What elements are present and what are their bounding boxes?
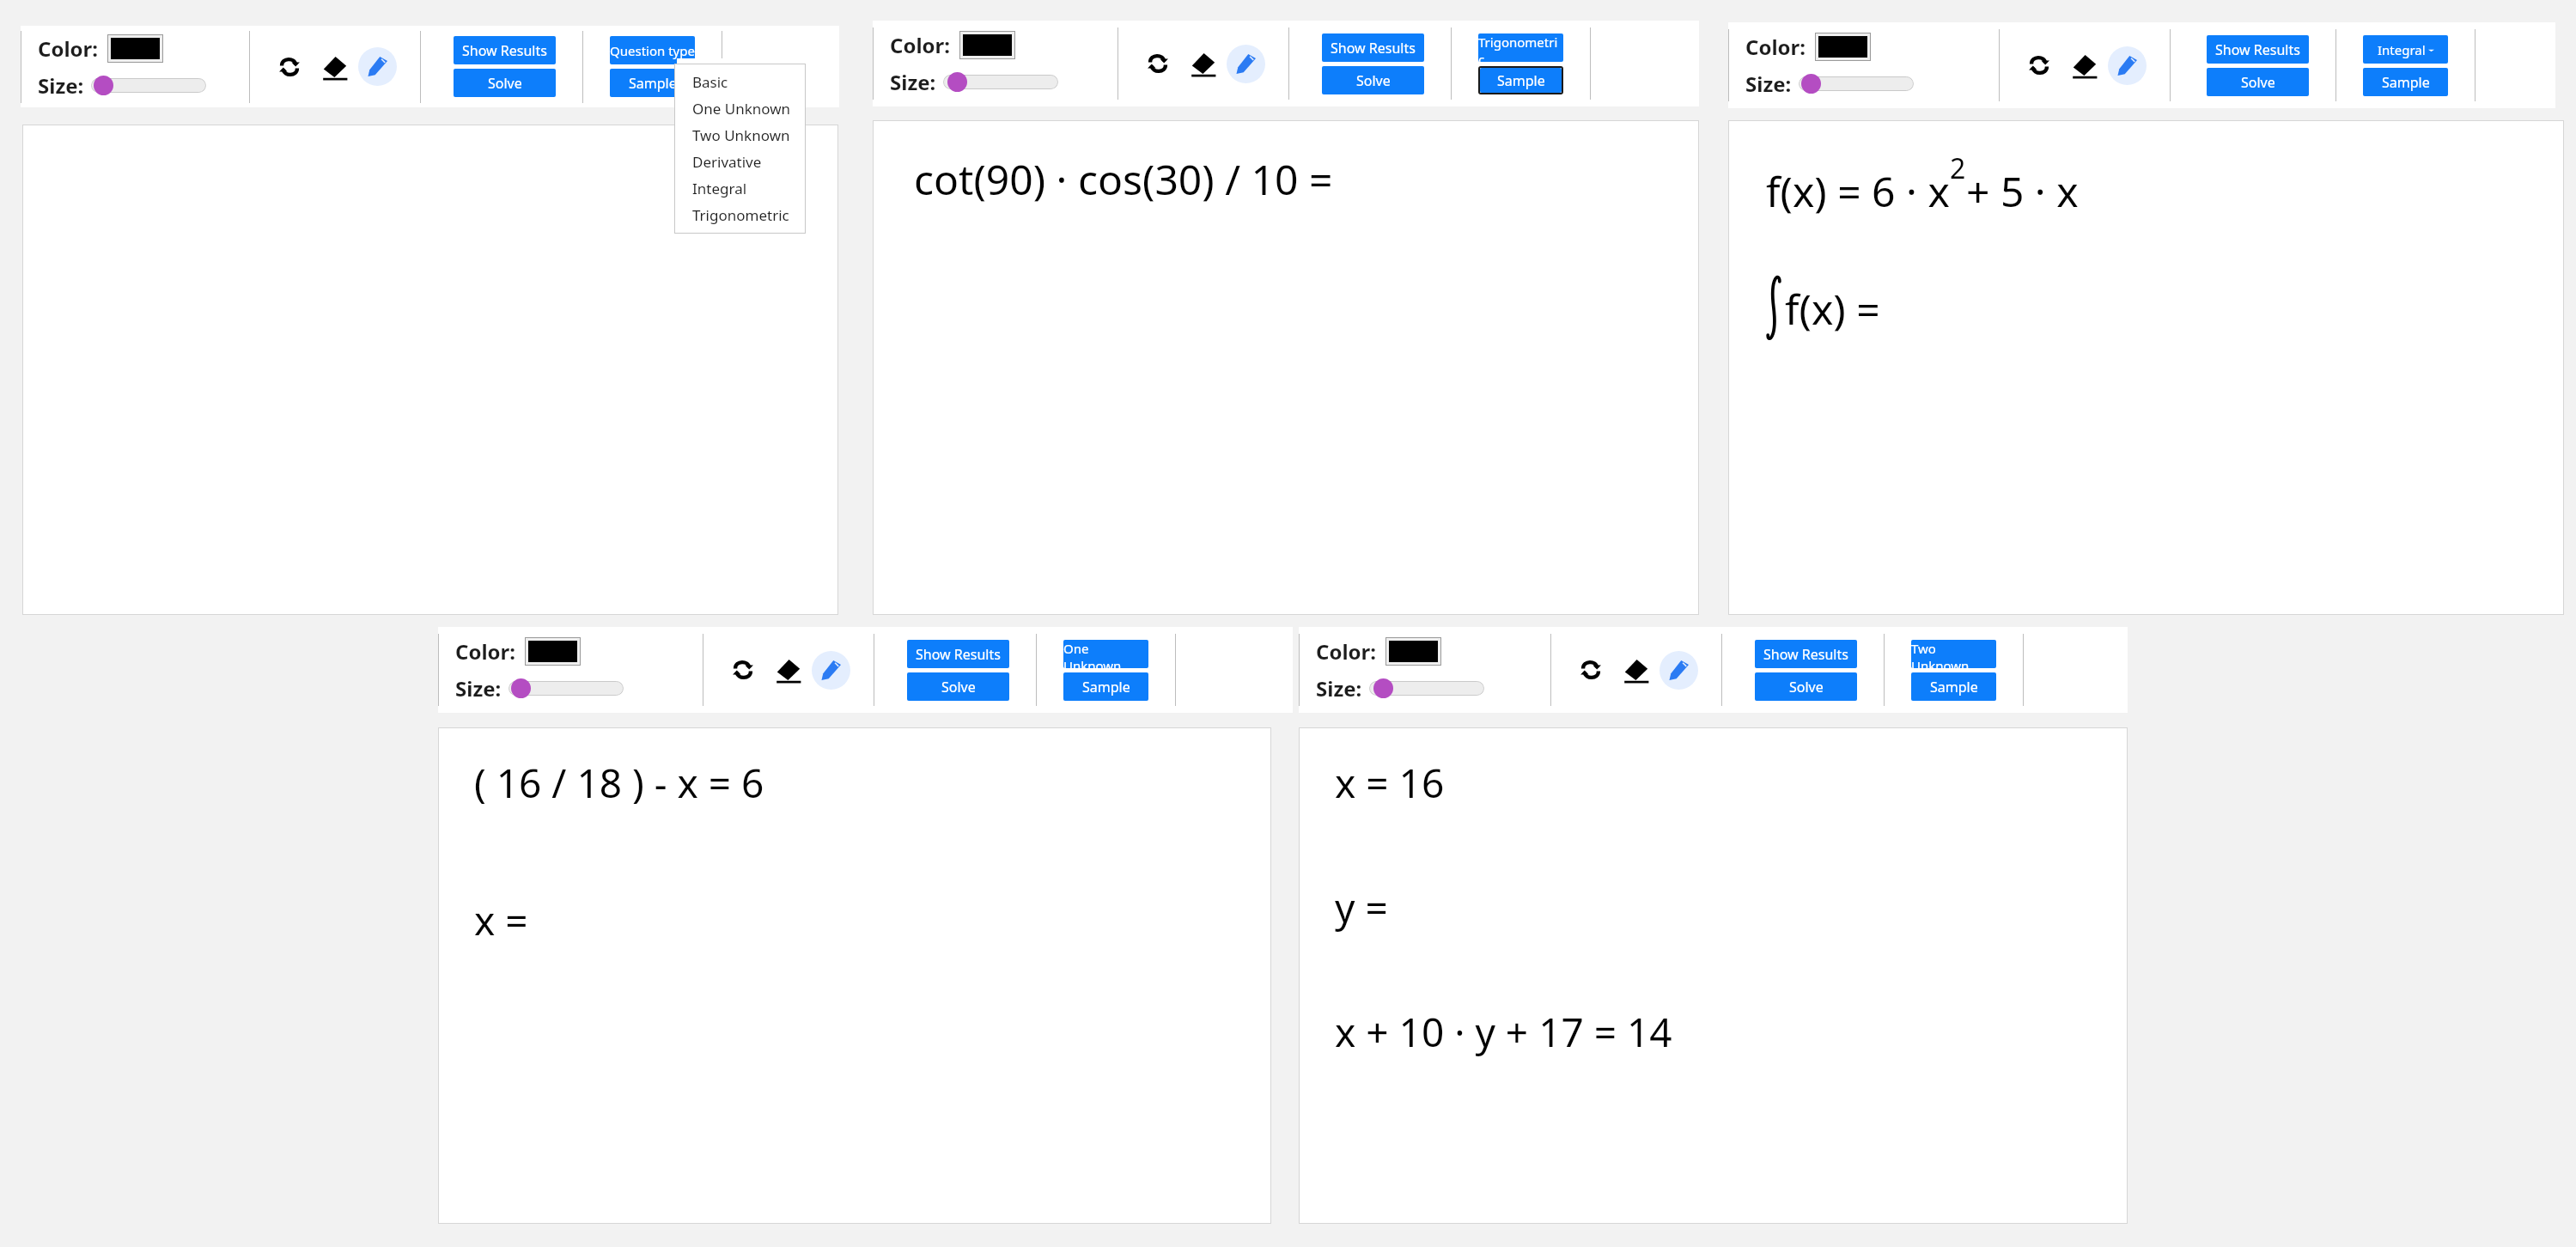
button[interactable]: Pencil (2108, 46, 2147, 85)
staticText: Solve (941, 678, 976, 696)
button[interactable] (1799, 73, 1914, 94)
button[interactable]: Basic (674, 69, 806, 95)
staticText: Show Results (462, 41, 547, 60)
button[interactable]: One Unknown (674, 95, 806, 122)
staticText: 2 (1950, 149, 1966, 187)
button[interactable]: Show Results (907, 640, 1009, 668)
button[interactable]: Solve (1322, 66, 1424, 94)
staticText: Solve (1789, 678, 1824, 696)
staticText: Show Results (2215, 40, 2300, 59)
staticText: ( 16 / 18 ) - x = 6 (474, 756, 764, 810)
staticText: Trigonometric (692, 205, 789, 225)
staticText: Sample (2382, 73, 2430, 92)
button[interactable]: Integral (674, 175, 806, 202)
staticText: Sample (629, 74, 677, 93)
staticText: One Unknown (692, 99, 791, 119)
staticText: Size: (890, 68, 936, 96)
staticText: y = (1335, 880, 1388, 934)
staticText: Two Unknown (1911, 640, 1996, 668)
button[interactable]: Refresh (273, 51, 306, 83)
staticText: x = 16 (1335, 756, 1445, 810)
button[interactable]: Sample (2363, 68, 2448, 96)
button[interactable]: Trigonometric (1478, 33, 1563, 62)
staticText: Solve (2241, 73, 2275, 92)
button[interactable]: Eraser (2068, 49, 2101, 82)
button[interactable]: Refresh (2023, 49, 2055, 82)
staticText: cot(90) · cos(30) / 10 = (914, 151, 1333, 207)
staticText: Color: (1745, 33, 1806, 61)
button[interactable]: Show Results (454, 36, 556, 64)
button[interactable]: Refresh (1574, 654, 1607, 686)
staticText: + 5 · x (1966, 163, 2079, 219)
staticText: Show Results (916, 645, 1001, 664)
button[interactable] (509, 678, 624, 699)
staticText: x + 10 · y + 17 = 14 (1335, 1005, 1672, 1059)
staticText: Show Results (1331, 39, 1416, 58)
button[interactable]: Refresh (727, 654, 759, 686)
staticText: Size: (1745, 70, 1792, 98)
button[interactable]: Sample (1480, 68, 1562, 93)
button[interactable] (963, 34, 1012, 56)
button[interactable]: Solve (1755, 672, 1857, 701)
staticText: f(x) = 6 · x (1766, 163, 1950, 219)
staticText: Sample (1497, 71, 1545, 90)
button[interactable]: f(x) = 6 · x (1728, 120, 2564, 615)
staticText: Size: (38, 71, 84, 100)
staticText: Size: (1316, 674, 1362, 703)
button[interactable]: Pencil (1227, 45, 1265, 83)
button[interactable]: Two Unknown (674, 122, 806, 149)
staticText: Integral (692, 179, 747, 198)
button[interactable]: One Unknown (1063, 640, 1148, 668)
button[interactable]: Eraser (319, 51, 351, 83)
button[interactable]: Solve (907, 672, 1009, 701)
button[interactable]: Solve (454, 69, 556, 97)
button[interactable]: Two Unknown (1911, 640, 1996, 668)
button[interactable] (1818, 36, 1867, 58)
staticText: f(x) = (1785, 281, 1880, 337)
staticText: Color: (1316, 637, 1377, 666)
staticText: One Unknown (1063, 640, 1148, 668)
button[interactable]: Pencil (1659, 651, 1698, 690)
button[interactable]: ( 16 / 18 ) - x = 6 (438, 727, 1271, 1224)
button[interactable]: x = 16 (1299, 727, 2128, 1224)
staticText: Color: (38, 34, 99, 63)
staticText: Integral (2378, 41, 2426, 58)
staticText: Sample (1082, 678, 1130, 696)
button[interactable]: Pencil (358, 47, 397, 86)
staticText: Color: (890, 31, 951, 59)
button[interactable]: Sample (610, 69, 695, 97)
button[interactable]: Solve (2207, 68, 2309, 96)
button[interactable] (22, 125, 838, 615)
button[interactable]: Sample (1911, 672, 1996, 701)
button[interactable] (943, 71, 1058, 93)
button[interactable]: cot(90) · cos(30) / 10 = (873, 120, 1699, 615)
staticText: Solve (488, 74, 522, 93)
staticText: Basic (692, 72, 728, 92)
button[interactable]: Sample (1063, 672, 1148, 701)
staticText: Solve (1356, 71, 1391, 90)
button[interactable] (91, 75, 206, 96)
staticText: Question type (610, 42, 695, 59)
button[interactable] (528, 641, 577, 662)
button[interactable]: Show Results (1755, 640, 1857, 668)
button[interactable]: Trigonometric (674, 202, 806, 228)
button[interactable]: Integral (2363, 35, 2448, 64)
button[interactable]: Show Results (2207, 35, 2309, 64)
staticText: Show Results (1763, 645, 1848, 664)
staticText: Two Unknown (692, 125, 790, 145)
staticText: Size: (455, 674, 502, 703)
button[interactable]: Eraser (1620, 654, 1653, 686)
button[interactable]: Pencil (812, 651, 850, 690)
button[interactable]: Eraser (772, 654, 805, 686)
button[interactable]: Show Results (1322, 33, 1424, 62)
staticText: x = (474, 893, 528, 947)
button[interactable] (1369, 678, 1484, 699)
button[interactable]: Eraser (1187, 47, 1220, 80)
staticText: Derivative (692, 152, 762, 172)
button[interactable]: Derivative (674, 149, 806, 175)
button[interactable]: Refresh (1142, 47, 1174, 80)
staticText: Sample (1930, 678, 1978, 696)
button[interactable]: Question type (610, 36, 695, 64)
